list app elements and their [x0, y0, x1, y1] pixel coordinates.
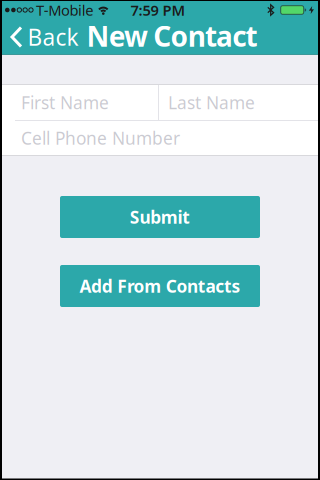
staticText: First Name [21, 91, 109, 114]
staticText: Submit [130, 205, 190, 228]
staticText: Cell Phone Number [21, 126, 180, 149]
button[interactable]: First Name [0, 85, 158, 120]
staticText: New Contact [86, 17, 257, 55]
staticText: Back [27, 22, 78, 52]
staticText: Last Name [168, 91, 255, 114]
staticText: Add From Contacts [79, 274, 241, 297]
button[interactable]: Cell Phone Number [0, 121, 320, 155]
button[interactable]: Back [1, 20, 78, 54]
staticText: T-Mobile [36, 0, 93, 20]
button[interactable]: Add From Contacts [60, 265, 260, 307]
button[interactable]: Submit [60, 196, 260, 238]
staticText: 7:59 PM [130, 0, 185, 20]
button[interactable]: Last Name [159, 85, 320, 120]
